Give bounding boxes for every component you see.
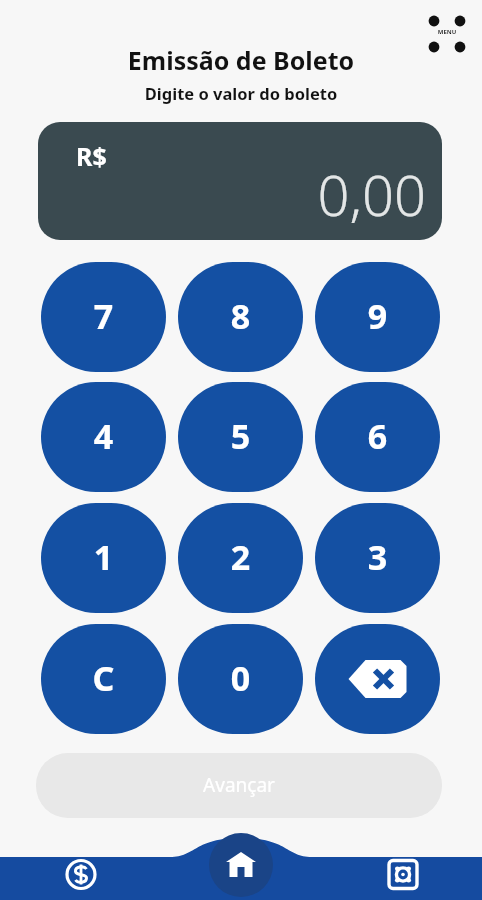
staticText: Avançar	[36, 772, 442, 798]
button[interactable]: 1	[41, 503, 166, 613]
button[interactable]: R$	[38, 122, 442, 240]
button[interactable]: Avançar	[36, 753, 442, 818]
button[interactable]: Menu	[423, 11, 471, 59]
button[interactable]: 9	[315, 262, 440, 372]
button[interactable]: Home	[209, 833, 273, 897]
staticText: 3	[315, 534, 440, 580]
staticText: 7	[41, 293, 166, 339]
staticText: 8	[178, 293, 303, 339]
staticText: 9	[315, 293, 440, 339]
staticText: R$	[76, 139, 107, 173]
button[interactable]: 8	[178, 262, 303, 372]
staticText: 4	[41, 413, 166, 459]
button[interactable]: 2	[178, 503, 303, 613]
staticText: 1	[41, 534, 166, 580]
staticText: 5	[178, 413, 303, 459]
button[interactable]: 4	[41, 382, 166, 492]
staticText: MENU	[423, 28, 471, 36]
button[interactable]: C	[41, 624, 166, 734]
button[interactable]: 6	[315, 382, 440, 492]
staticText: Digite o valor do boleto	[0, 82, 482, 104]
staticText: 2	[178, 534, 303, 580]
staticText: Emissão de Boleto	[0, 43, 482, 77]
button[interactable]: Payments	[57, 853, 105, 900]
button[interactable]: 7	[41, 262, 166, 372]
button[interactable]: 3	[315, 503, 440, 613]
staticText: 6	[315, 413, 440, 459]
staticText: 0,00	[38, 156, 426, 232]
button[interactable]: 5	[178, 382, 303, 492]
button[interactable]: Backspace	[315, 624, 440, 734]
button[interactable]: Settings	[379, 853, 427, 900]
staticText: C	[41, 655, 166, 701]
staticText: 0	[178, 655, 303, 701]
button[interactable]: 0	[178, 624, 303, 734]
